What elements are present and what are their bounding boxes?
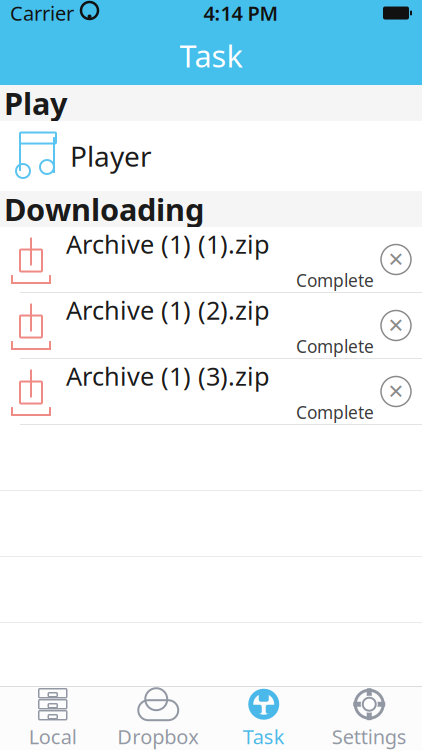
staticText: Carrier — [10, 0, 74, 26]
staticText: Complete — [296, 401, 374, 424]
staticText: Archive (1) (1).zip — [66, 227, 270, 261]
staticText: Complete — [296, 269, 374, 292]
staticText: Settings — [332, 723, 407, 750]
button[interactable]: Cancel download — [374, 303, 418, 347]
button[interactable]: Player — [0, 121, 422, 191]
button[interactable]: Task — [211, 687, 316, 750]
staticText: Archive (1) (3).zip — [66, 359, 270, 393]
staticText: Downloading — [4, 189, 204, 229]
button[interactable]: Local — [0, 687, 105, 750]
button[interactable]: Dropbox — [105, 687, 211, 750]
button[interactable]: Cancel download — [374, 237, 418, 281]
staticText: Local — [29, 723, 77, 750]
staticText: Task — [179, 35, 242, 76]
staticText: ✕ — [387, 248, 404, 271]
button[interactable]: Settings — [316, 687, 422, 750]
staticText: 4:14 PM — [203, 0, 278, 26]
staticText: Archive (1) (2).zip — [66, 293, 270, 327]
staticText: ✕ — [387, 380, 404, 403]
button[interactable]: Cancel download — [374, 369, 418, 413]
staticText: Play — [4, 83, 68, 123]
staticText: ✕ — [387, 314, 404, 337]
staticText: Complete — [296, 335, 374, 358]
staticText: Task — [243, 723, 285, 750]
staticText: Dropbox — [117, 723, 199, 750]
staticText: Player — [70, 137, 152, 175]
